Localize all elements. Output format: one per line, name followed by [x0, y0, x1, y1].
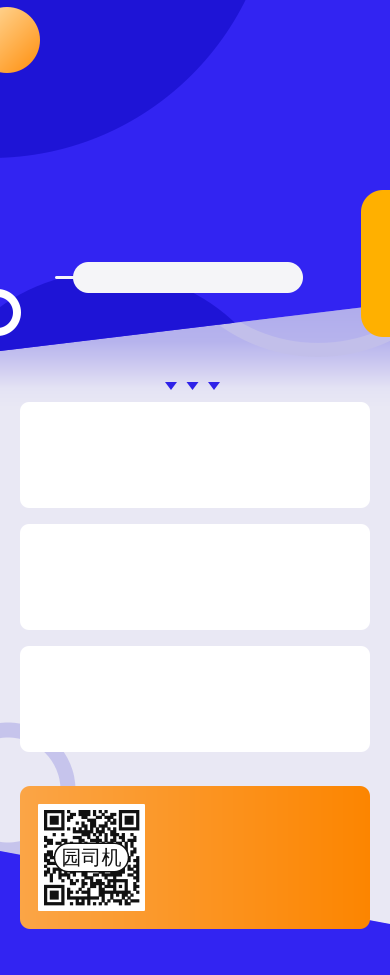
staticText: 园司机	[61, 845, 121, 870]
button[interactable]: 园司机	[0, 786, 390, 929]
button[interactable]: Search	[73, 262, 303, 293]
